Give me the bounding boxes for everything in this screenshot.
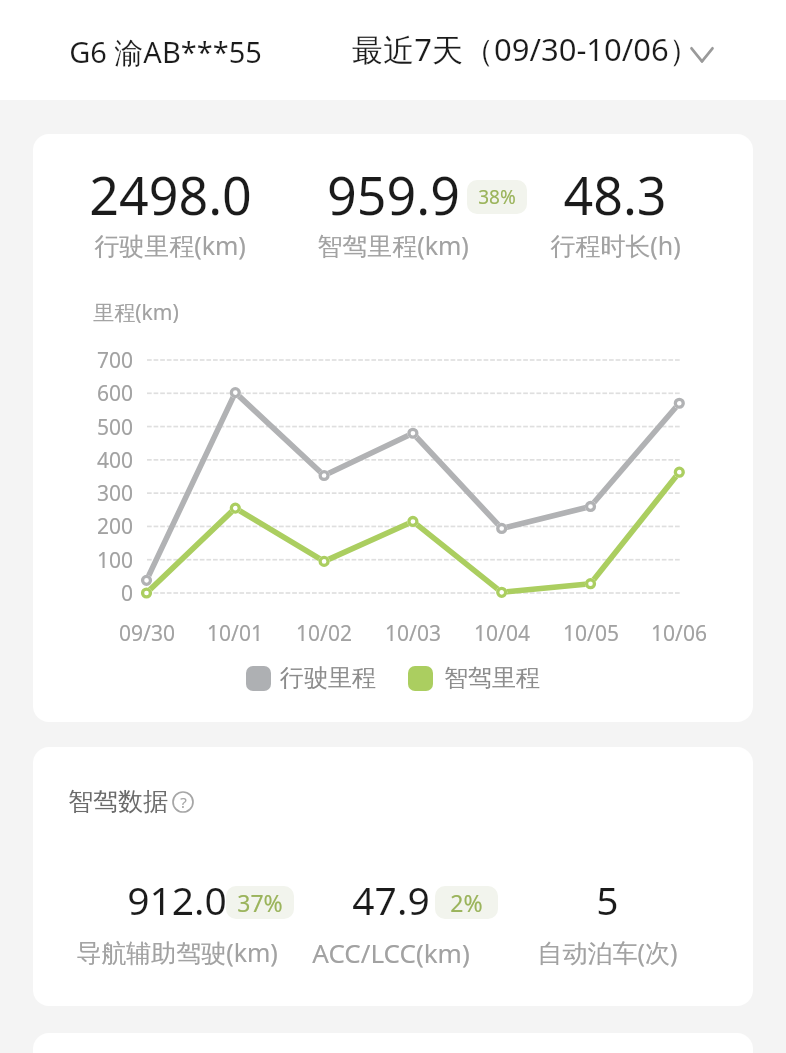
staticText: 10/01 (175, 619, 295, 648)
staticText: 最近7天（09/30-10/06） (352, 28, 700, 70)
staticText: 行驶里程 (280, 663, 376, 693)
staticText: ? (180, 792, 187, 812)
button[interactable]: 行驶里程统计 (33, 134, 753, 722)
staticText: 智驾数据 (68, 786, 168, 817)
staticText: 自动泊车(次) (537, 935, 678, 969)
staticText: 38% (478, 184, 516, 210)
staticText: 700 (33, 346, 133, 375)
staticText: 10/03 (353, 619, 473, 648)
staticText: 0 (33, 579, 133, 608)
staticText: 2% (450, 887, 483, 918)
staticText: 10/06 (619, 619, 739, 648)
button[interactable]: 最近7天（09/30-10/06） (352, 28, 700, 70)
staticText: 200 (33, 512, 133, 541)
button[interactable]: G6 渝AB***55 (69, 32, 262, 72)
staticText: 2498.0 (89, 159, 252, 230)
button[interactable]: 行驶里程 (246, 663, 376, 693)
button[interactable]: Change date range (687, 42, 717, 66)
staticText: 37% (237, 887, 283, 918)
staticText: 400 (33, 446, 133, 475)
staticText: 里程(km) (93, 298, 179, 327)
staticText: 10/05 (531, 619, 651, 648)
staticText: 导航辅助驾驶(km) (76, 935, 278, 969)
staticText: 959.9 (327, 159, 460, 230)
button[interactable]: Help (172, 791, 194, 813)
staticText: 100 (33, 546, 133, 575)
staticText: G6 渝AB***55 (69, 32, 262, 72)
staticText: 行程时长(h) (550, 228, 681, 262)
button[interactable]: 智驾数据 (33, 747, 753, 1006)
staticText: 5 (596, 873, 619, 926)
staticText: 47.9 (352, 873, 430, 926)
staticText: 48.3 (563, 159, 667, 230)
staticText: ACC/LCC(km) (312, 935, 470, 970)
staticText: 300 (33, 479, 133, 508)
button[interactable]: 智驾里程 (408, 663, 540, 693)
staticText: 10/02 (264, 619, 384, 648)
staticText: 智驾里程(km) (317, 228, 469, 262)
staticText: 912.0 (127, 873, 227, 926)
staticText: 10/04 (442, 619, 562, 648)
staticText: 500 (33, 413, 133, 442)
staticText: 智驾里程 (444, 663, 540, 693)
staticText: 09/30 (87, 619, 207, 648)
staticText: 行驶里程(km) (94, 228, 246, 262)
button[interactable]: 智驾数据 (68, 786, 194, 817)
staticText: 600 (33, 379, 133, 408)
